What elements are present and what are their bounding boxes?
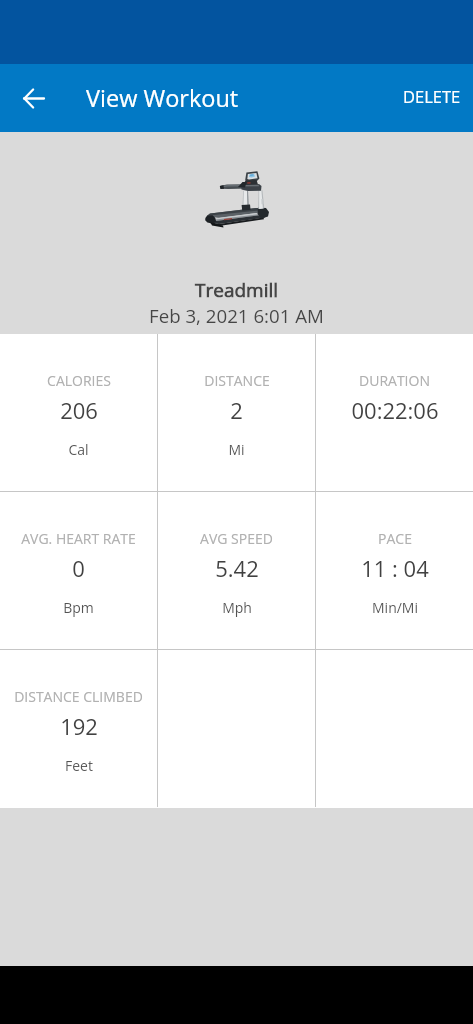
staticText: Mph [222, 598, 252, 617]
staticText: 2 [230, 395, 243, 425]
staticText: 5.42 [215, 553, 259, 583]
staticText: DISTANCE CLIMBED [14, 687, 143, 706]
staticText: Treadmill [195, 277, 279, 303]
button[interactable]: DELETE [391, 73, 473, 123]
button[interactable]: Back [10, 74, 58, 122]
staticText: Feb 3, 2021 6:01 AM [149, 303, 324, 328]
staticText: Min/Mi [372, 598, 418, 617]
staticText: DURATION [359, 371, 430, 390]
staticText: Mi [228, 440, 245, 459]
staticText: DELETE [403, 85, 461, 107]
staticText: View Workout [86, 82, 239, 114]
staticText: PACE [378, 529, 412, 548]
staticText: CALORIES [47, 371, 111, 390]
staticText: 00:22:06 [351, 395, 439, 425]
staticText: Cal [68, 440, 89, 459]
staticText: DISTANCE [204, 371, 270, 390]
staticText: Bpm [63, 598, 94, 617]
staticText: AVG SPEED [200, 529, 273, 548]
staticText: 11 : 04 [361, 553, 429, 583]
staticText: 206 [60, 395, 98, 425]
staticText: 192 [60, 711, 98, 741]
staticText: AVG. HEART RATE [21, 529, 136, 548]
staticText: 0 [72, 553, 85, 583]
staticText: Feet [65, 756, 93, 775]
